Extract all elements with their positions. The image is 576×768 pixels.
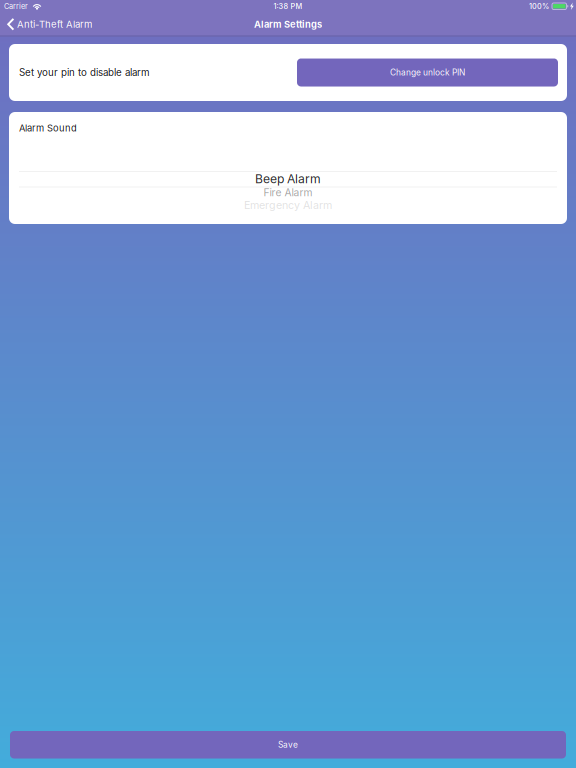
staticText: Change unlock PIN [390,67,465,78]
staticText: Beep Alarm [255,171,321,186]
button[interactable]: Save [10,731,566,758]
staticText: Alarm Settings [254,19,322,30]
staticText: Alarm Sound [19,122,77,134]
staticText: Anti-Theft Alarm [17,18,92,30]
staticText: Set your pin to disable alarm [19,67,150,78]
button[interactable]: Anti-Theft Alarm [0,13,100,36]
staticText: Fire Alarm [263,186,312,199]
staticText: Carrier [4,2,28,11]
staticText: Emergency Alarm [244,199,332,211]
staticText: Save [278,740,298,750]
staticText: 100% [529,2,549,11]
staticText: 1:38 PM [273,2,302,11]
button[interactable]: Change unlock PIN [297,58,558,86]
